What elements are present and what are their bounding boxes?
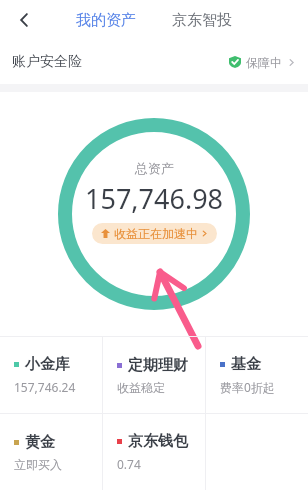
- staticText: 京东智投: [172, 11, 232, 30]
- staticText: 保障中: [246, 55, 282, 70]
- button[interactable]: 京东智投: [162, 5, 242, 36]
- button[interactable]: 定期理财: [103, 337, 205, 413]
- staticText: 0.74: [117, 456, 141, 472]
- staticText: 总资产: [135, 160, 174, 176]
- staticText: 基金: [231, 355, 261, 374]
- staticText: 小金库: [25, 355, 70, 374]
- button[interactable]: 账户安全险: [0, 40, 308, 84]
- staticText: 京东钱包: [128, 432, 188, 451]
- staticText: 黄金: [25, 433, 55, 452]
- staticText: 费率0折起: [220, 379, 275, 395]
- staticText: 立即买入: [14, 457, 62, 472]
- staticText: 收益正在加速中: [114, 226, 198, 241]
- button[interactable]: 小金库: [0, 337, 102, 413]
- button[interactable]: 黄金: [0, 414, 102, 490]
- staticText: 定期理财: [128, 356, 188, 375]
- button[interactable]: Back: [6, 2, 42, 38]
- button[interactable]: 收益正在加速中: [92, 223, 217, 244]
- staticText: 我的资产: [76, 11, 136, 30]
- staticText: 157,746.98: [85, 180, 224, 217]
- button[interactable]: 基金: [206, 337, 308, 413]
- staticText: 账户安全险: [12, 53, 82, 71]
- button[interactable]: 我的资产: [66, 5, 146, 36]
- staticText: 157,746.24: [14, 379, 76, 395]
- button[interactable]: 京东钱包: [103, 414, 205, 490]
- staticText: 收益稳定: [117, 380, 165, 395]
